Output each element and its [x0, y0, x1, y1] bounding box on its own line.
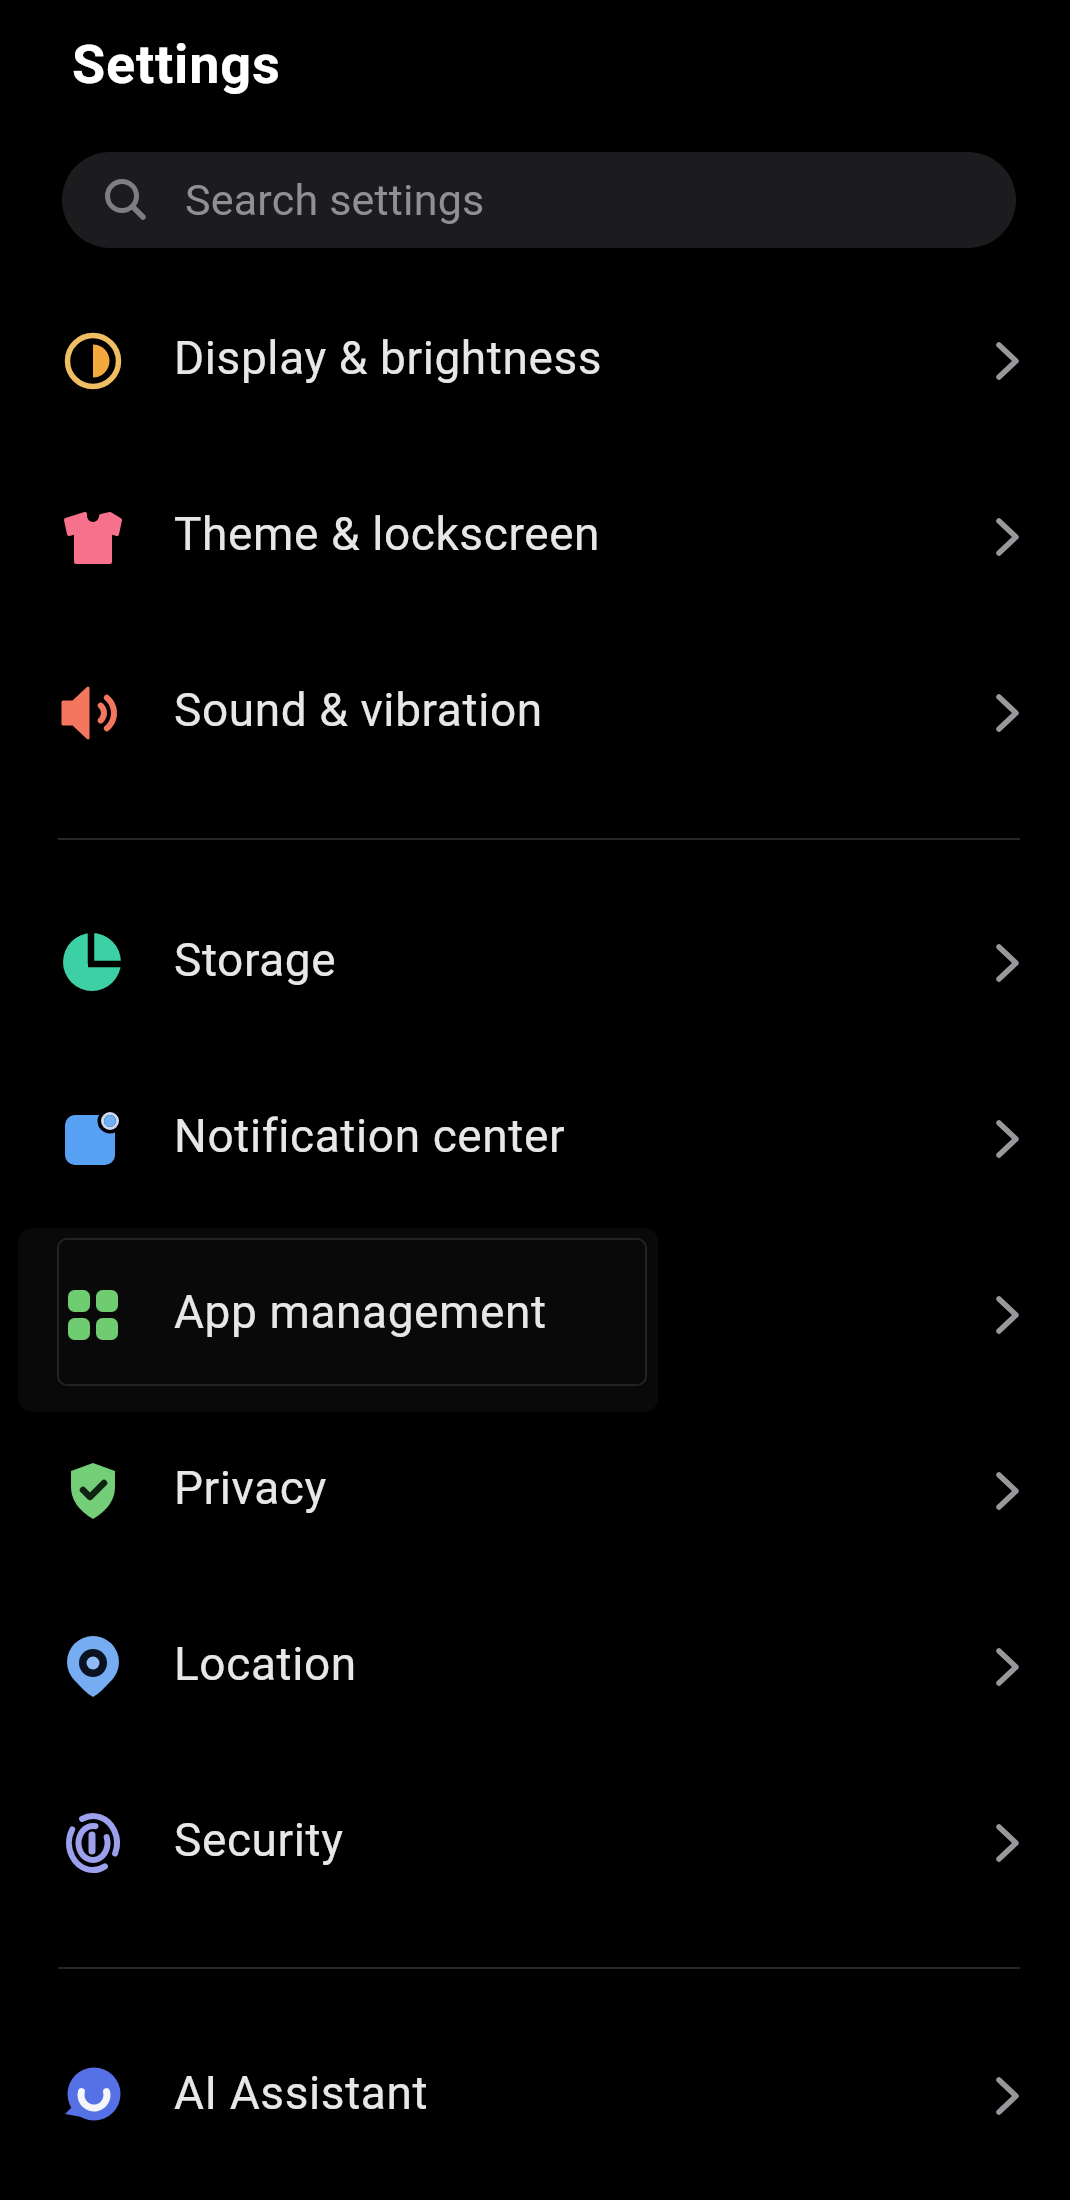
staticText: App management [174, 1285, 547, 1339]
staticText: Search settings [185, 175, 485, 225]
button[interactable]: Storage [0, 875, 1070, 1051]
staticText: Privacy [174, 1461, 327, 1515]
button[interactable]: Display & brightness [0, 273, 1070, 449]
button[interactable]: AI Assistant [0, 2008, 1070, 2184]
staticText: Sound & vibration [174, 683, 543, 737]
staticText: Display & brightness [174, 331, 603, 385]
button[interactable]: App management [0, 1227, 1070, 1403]
staticText: Theme & lockscreen [174, 507, 601, 561]
staticText: Storage [174, 933, 337, 987]
button[interactable]: Privacy [0, 1403, 1070, 1579]
button[interactable]: Security [0, 1755, 1070, 1931]
button[interactable]: Location [0, 1579, 1070, 1755]
staticText: AI Assistant [174, 2066, 429, 2120]
button[interactable]: Search settings [62, 152, 1016, 248]
staticText: Notification center [174, 1109, 566, 1163]
button[interactable]: Theme & lockscreen [0, 449, 1070, 625]
staticText: Security [174, 1813, 344, 1867]
staticText: Settings [72, 33, 281, 96]
button[interactable]: Notification center [0, 1051, 1070, 1227]
staticText: Location [174, 1637, 357, 1691]
button[interactable]: Sound & vibration [0, 625, 1070, 801]
